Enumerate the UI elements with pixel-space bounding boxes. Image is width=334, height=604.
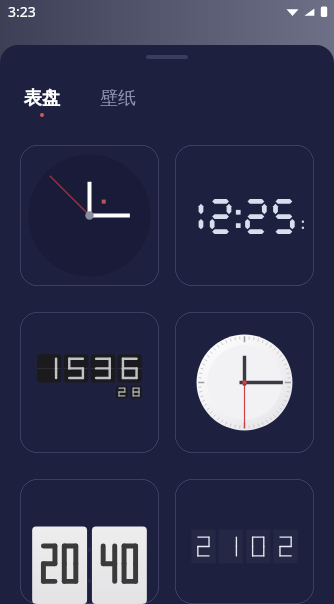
staticText: 3:23	[8, 2, 36, 21]
button[interactable]: Analog dark watch face	[20, 145, 159, 286]
button[interactable]: Analog light watch face	[175, 312, 314, 453]
button[interactable]: Outline digits watch face	[175, 479, 314, 604]
staticText: 表盘	[24, 87, 60, 110]
staticText: 壁纸	[100, 87, 136, 110]
button[interactable]: 壁纸	[98, 87, 138, 110]
button[interactable]: 表盘	[22, 87, 62, 117]
button[interactable]: Flip digits watch face	[20, 312, 159, 453]
button[interactable]: Digital watch face	[175, 145, 314, 286]
button[interactable]: Large flip watch face	[20, 479, 159, 604]
